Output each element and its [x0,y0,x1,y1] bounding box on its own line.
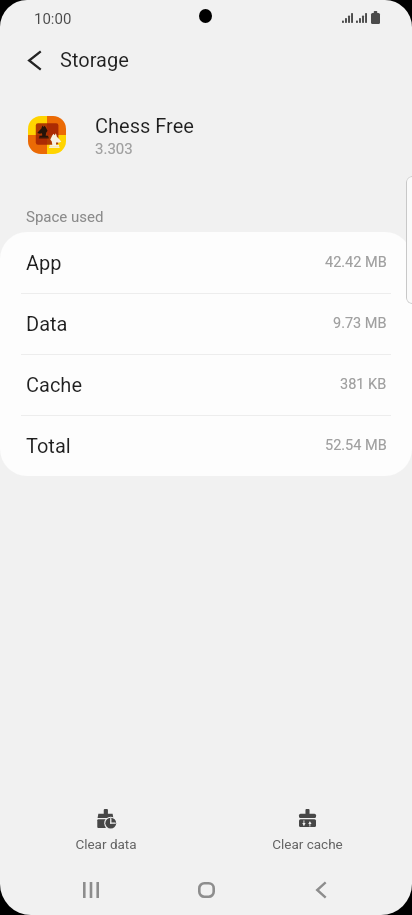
staticText: App [26,251,62,274]
staticText: Storage [60,48,129,71]
staticText: Clear data [75,836,137,852]
staticText: 3.303 [95,140,133,158]
staticText: Chess Free [95,114,194,137]
button[interactable]: Home [161,867,251,912]
button[interactable]: App [0,232,412,293]
button[interactable]: Total [0,415,412,476]
staticText: Cache [26,373,82,396]
staticText: Total [26,434,71,457]
staticText: 9.73 MB [333,315,387,332]
staticText: Space used [26,208,104,226]
button[interactable]: Cache [0,354,412,415]
button[interactable]: Recent apps [46,867,136,912]
staticText: 52.54 MB [325,437,387,454]
button[interactable]: Back [276,867,366,912]
staticText: Clear cache [272,836,343,852]
button[interactable]: Navigate up [10,36,58,84]
staticText: Data [26,312,68,335]
button[interactable]: Clear cache [217,795,397,857]
staticText: 42.42 MB [325,254,387,271]
staticText: 381 KB [340,376,387,393]
button[interactable]: Data [0,293,412,354]
button[interactable]: Clear data [16,795,196,857]
staticText: 10:00 [34,10,72,28]
